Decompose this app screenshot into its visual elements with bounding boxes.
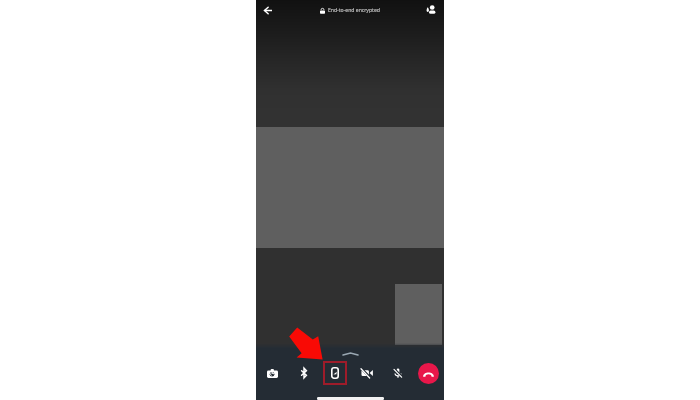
button[interactable]: Switch to phone [323,361,347,385]
button[interactable]: Add person [420,0,444,20]
button[interactable]: Back [256,0,280,20]
button[interactable]: Flip camera [256,358,288,388]
button[interactable]: End call [418,363,439,384]
button[interactable]: Mic off [382,358,413,388]
button[interactable]: Bluetooth [288,358,320,388]
staticText: End-to-end encrypted [328,7,380,14]
button[interactable]: Video off [351,358,382,388]
